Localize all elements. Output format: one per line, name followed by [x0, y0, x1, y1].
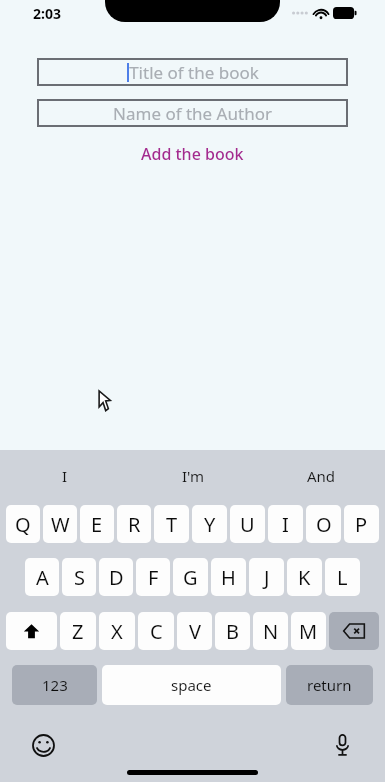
staticText: I	[62, 466, 68, 486]
button[interactable]: Z	[60, 612, 96, 650]
button[interactable]: And	[257, 450, 385, 502]
button[interactable]: 123	[12, 665, 97, 705]
button[interactable]: G	[173, 558, 208, 596]
button[interactable]: return	[286, 665, 373, 705]
staticText: 2:03	[33, 4, 61, 23]
button[interactable]: Dictation	[327, 730, 357, 760]
staticText: 123	[42, 675, 68, 695]
staticText: Add the book	[141, 143, 244, 165]
button[interactable]: U	[230, 505, 265, 543]
button[interactable]: T	[154, 505, 189, 543]
button[interactable]: W	[43, 505, 77, 543]
button[interactable]: V	[177, 612, 212, 650]
button[interactable]: B	[215, 612, 250, 650]
staticText: J	[264, 564, 270, 591]
staticText: Z	[72, 618, 84, 645]
button[interactable]: A	[25, 558, 59, 596]
button[interactable]: Y	[192, 505, 227, 543]
staticText: F	[148, 564, 159, 591]
staticText: return	[307, 675, 352, 695]
staticText: And	[307, 466, 336, 486]
staticText: L	[337, 564, 348, 591]
button[interactable]: I	[0, 450, 129, 502]
staticText: D	[109, 564, 124, 591]
button[interactable]: Name of the Author	[37, 99, 348, 127]
staticText: X	[111, 618, 123, 645]
button[interactable]: F	[136, 558, 170, 596]
button[interactable]: Q	[6, 505, 40, 543]
button[interactable]: Add the book	[0, 143, 385, 165]
staticText: R	[128, 511, 141, 538]
staticText: K	[298, 564, 311, 591]
staticText: Y	[204, 511, 216, 538]
staticText: space	[171, 675, 212, 695]
button[interactable]: Backspace	[329, 612, 379, 650]
button[interactable]: I	[268, 505, 303, 543]
button[interactable]: J	[249, 558, 284, 596]
button[interactable]: O	[306, 505, 341, 543]
staticText: G	[183, 564, 198, 591]
staticText: B	[226, 618, 239, 645]
button[interactable]: C	[138, 612, 174, 650]
staticText: C	[150, 618, 163, 645]
button[interactable]: L	[325, 558, 360, 596]
button[interactable]: D	[99, 558, 133, 596]
button[interactable]: M	[291, 612, 326, 650]
button[interactable]: Shift	[6, 612, 57, 650]
staticText: V	[189, 618, 201, 645]
staticText: O	[316, 511, 332, 538]
staticText: I	[282, 511, 289, 538]
button[interactable]: P	[344, 505, 379, 543]
staticText: E	[91, 511, 103, 538]
staticText: S	[74, 564, 85, 591]
button[interactable]: R	[117, 505, 151, 543]
staticText: N	[263, 618, 279, 645]
staticText: Title of the book	[129, 61, 259, 84]
button[interactable]: S	[62, 558, 96, 596]
staticText: P	[355, 511, 368, 538]
staticText: Q	[15, 511, 31, 538]
button[interactable]: X	[99, 612, 135, 650]
button[interactable]: K	[287, 558, 322, 596]
staticText: T	[166, 511, 178, 538]
button[interactable]: H	[211, 558, 246, 596]
button[interactable]: Title of the book	[37, 58, 348, 86]
button[interactable]: I'm	[129, 450, 257, 502]
staticText: Name of the Author	[113, 102, 272, 125]
button[interactable]: N	[253, 612, 288, 650]
button[interactable]: Emoji	[28, 730, 58, 760]
button[interactable]: space	[102, 665, 281, 705]
staticText: A	[36, 564, 49, 591]
button[interactable]: E	[80, 505, 114, 543]
staticText: U	[240, 511, 255, 538]
staticText: H	[221, 564, 236, 591]
staticText: W	[51, 511, 70, 538]
staticText: M	[299, 618, 318, 645]
staticText: I'm	[182, 466, 205, 486]
